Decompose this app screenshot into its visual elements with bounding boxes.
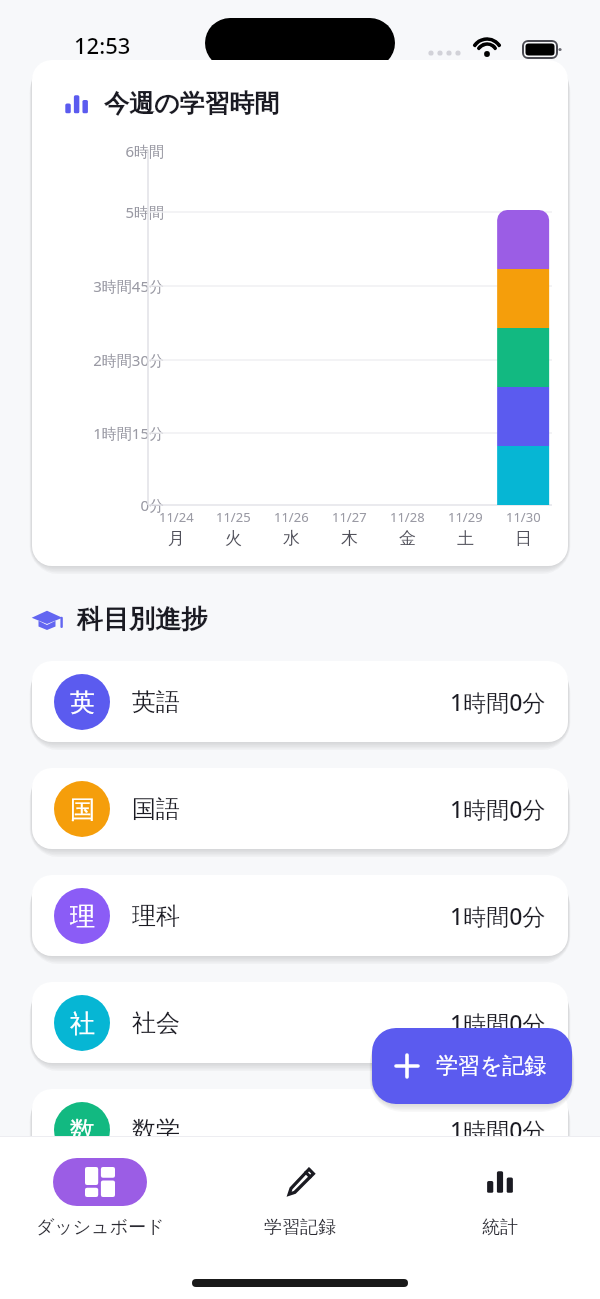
button[interactable]: 学習記録 (200, 1152, 400, 1245)
staticText: 木 (341, 528, 358, 549)
other: 学習記録 (284, 1166, 316, 1198)
staticText: 11/27 (332, 508, 367, 526)
button[interactable]: ダッシュボード (0, 1152, 200, 1245)
staticText: 数学 (132, 1115, 180, 1145)
staticText: 学習を記録 (436, 1052, 547, 1080)
staticText: 水 (283, 528, 300, 549)
staticText: 11/24 (159, 508, 194, 526)
staticText: 12:53 (74, 30, 131, 60)
button[interactable]: 理 (32, 875, 568, 956)
other: ダッシュボード (85, 1167, 115, 1197)
staticText: 日 (515, 528, 532, 549)
staticText: 数 (70, 1115, 95, 1146)
staticText: 英 (70, 687, 95, 718)
button[interactable]: 英 (32, 661, 568, 742)
staticText: 1時間15分 (32, 423, 164, 443)
staticText: 今週の学習時間 (104, 88, 280, 119)
staticText: 3時間45分 (32, 276, 164, 296)
button[interactable]: 統計 (400, 1152, 600, 1245)
staticText: 1時間0分 (450, 793, 546, 824)
staticText: 1時間0分 (450, 900, 546, 931)
other: 統計 (486, 1168, 514, 1196)
staticText: 理科 (132, 901, 180, 931)
staticText: 統計 (482, 1216, 518, 1239)
staticText: 11/26 (274, 508, 309, 526)
staticText: 1時間0分 (450, 1007, 546, 1038)
staticText: 2時間30分 (32, 350, 164, 370)
button[interactable]: 社 (32, 982, 568, 1063)
staticText: 1時間0分 (450, 1114, 546, 1145)
button[interactable]: 国 (32, 768, 568, 849)
staticText: 1時間0分 (450, 686, 546, 717)
staticText: 11/30 (506, 508, 541, 526)
staticText: ダッシュボード (36, 1216, 165, 1239)
staticText: 11/28 (390, 508, 425, 526)
staticText: 5時間 (32, 202, 164, 222)
staticText: 6時間 (32, 141, 164, 161)
staticText: 11/25 (216, 508, 251, 526)
staticText: 土 (457, 528, 474, 549)
staticText: 理 (70, 901, 95, 932)
staticText: 社会 (132, 1008, 180, 1038)
button[interactable]: 数 (32, 1089, 568, 1170)
staticText: 学習記録 (264, 1216, 336, 1239)
staticText: 科目別進捗 (77, 603, 207, 636)
staticText: 国語 (132, 794, 180, 824)
staticText: 11/29 (448, 508, 483, 526)
staticText: 火 (225, 528, 242, 549)
staticText: 0分 (32, 495, 164, 515)
staticText: 社 (70, 1008, 95, 1039)
staticText: 国 (70, 794, 95, 825)
staticText: 月 (168, 528, 185, 549)
staticText: 金 (399, 528, 416, 549)
button[interactable]: 学習を記録 (372, 1028, 572, 1104)
staticText: 英語 (132, 687, 180, 717)
